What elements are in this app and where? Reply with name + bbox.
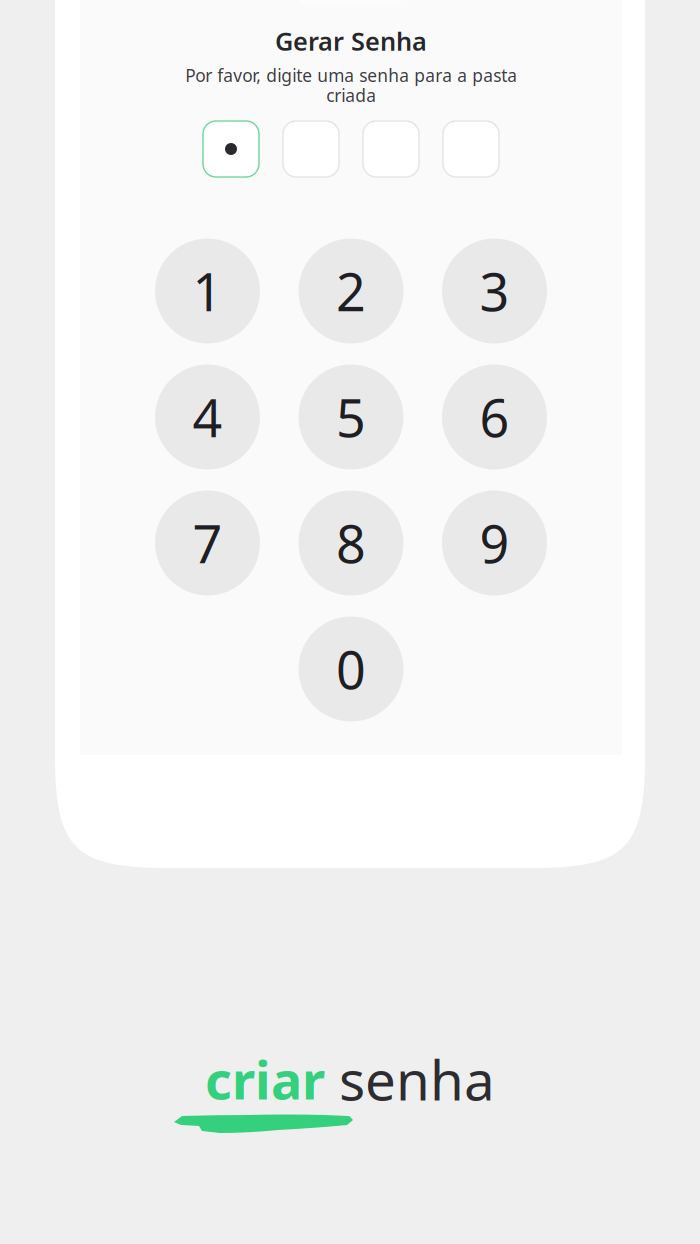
staticText: Gerar Senha [275,24,427,58]
staticText: 7 [192,508,222,578]
button[interactable]: 0 [298,616,403,721]
staticText: 5 [336,382,366,452]
button[interactable]: 1 [155,238,260,343]
staticText: criar [205,1045,325,1114]
button[interactable]: 5 [298,364,403,469]
button[interactable]: 9 [442,490,547,595]
button[interactable]: 3 [442,238,547,343]
staticText: 1 [192,256,222,326]
button[interactable]: 6 [442,364,547,469]
staticText: Por favor, digite uma senha para a pasta… [185,64,517,107]
button[interactable]: 4 [155,364,260,469]
button[interactable]: Senha, 1 de 4 dígitos inseridos [80,121,622,177]
staticText: 6 [479,382,509,452]
button[interactable]: 8 [298,490,403,595]
staticText: 9 [479,508,509,578]
button[interactable]: 2 [298,238,403,343]
staticText: 3 [479,256,509,326]
staticText: 8 [336,508,366,578]
staticText: 4 [192,382,222,452]
staticText: 2 [336,256,366,326]
button[interactable]: 7 [155,490,260,595]
staticText: senha [325,1043,495,1116]
staticText: 0 [336,634,366,704]
